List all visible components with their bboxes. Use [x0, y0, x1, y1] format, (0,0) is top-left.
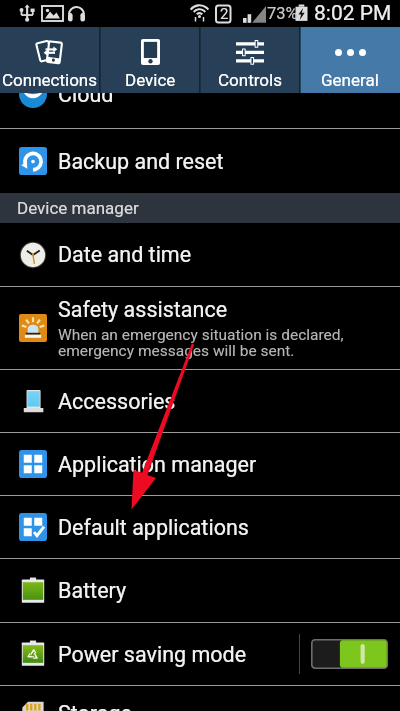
button[interactable]: Date and time	[0, 223, 400, 286]
staticText: Accessories	[58, 389, 176, 414]
staticText: Default applications	[58, 515, 249, 540]
staticText: Battery	[58, 578, 127, 603]
button[interactable]: Storage	[0, 686, 400, 711]
staticText: Date and time	[58, 242, 192, 267]
staticText: Device manager	[17, 198, 139, 218]
staticText: 73%	[267, 4, 298, 23]
staticText: Controls	[218, 70, 282, 90]
staticText: Power saving mode	[58, 642, 247, 667]
staticText: Backup and reset	[58, 149, 224, 174]
button[interactable]: Safety assistance	[0, 287, 400, 369]
staticText: Device	[125, 70, 176, 90]
staticText: 2	[220, 5, 229, 23]
staticText: Safety assistance	[58, 297, 228, 322]
button[interactable]: Device	[100, 27, 200, 93]
button[interactable]: Power saving mode	[0, 623, 400, 685]
button[interactable]: Cloud	[0, 93, 400, 128]
staticText: Connections	[2, 70, 98, 90]
staticText: Application manager	[58, 452, 257, 477]
button[interactable]: Accessories	[0, 370, 400, 432]
button[interactable]: Battery	[0, 559, 400, 622]
staticText: Cloud	[58, 93, 114, 107]
staticText: When an emergency situation is declared,…	[58, 326, 344, 360]
button[interactable]: Backup and reset	[0, 129, 400, 193]
button[interactable]: Default applications	[0, 496, 400, 558]
button[interactable]: Controls	[200, 27, 300, 93]
button[interactable]: General	[300, 27, 400, 93]
button[interactable]: Connections	[0, 27, 100, 93]
staticText: Storage	[58, 701, 132, 711]
button[interactable]: Power saving mode toggle	[311, 639, 388, 669]
staticText: 8:02 PM	[314, 1, 392, 26]
staticText: General	[321, 70, 379, 90]
button[interactable]: Application manager	[0, 433, 400, 495]
